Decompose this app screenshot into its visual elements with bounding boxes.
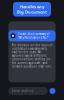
staticText: Handles any (20, 4, 44, 9)
staticText: The decision on the topic of notificatio… (11, 43, 52, 68)
staticText: Big Document (17, 9, 47, 15)
staticText: Create short summary of (17, 32, 49, 36)
staticText: Ask me anything (11, 89, 33, 93)
staticText: “Why Notifications No?” (17, 36, 48, 39)
